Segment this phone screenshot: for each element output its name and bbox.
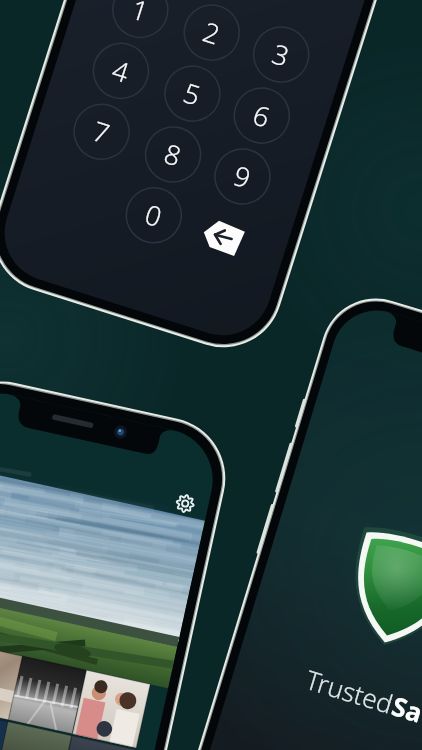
button[interactable] <box>0 0 422 750</box>
